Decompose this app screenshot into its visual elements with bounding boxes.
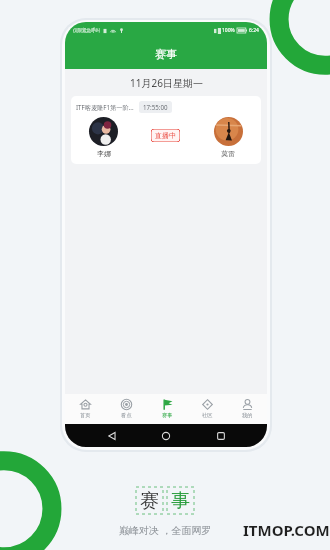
staticText: 看点 (121, 412, 132, 419)
button[interactable]: 社区 (187, 394, 227, 424)
button[interactable]: ITF喀麦隆F1第一阶... (71, 96, 261, 164)
button[interactable]: 看点 (106, 394, 147, 424)
button[interactable]: 首页 (65, 394, 106, 424)
button[interactable]: Back (104, 428, 120, 444)
staticText: 社区 (202, 412, 213, 419)
staticText: 莫雷 (221, 149, 235, 158)
staticText: 我的 (242, 412, 253, 419)
button[interactable]: 我的 (227, 394, 267, 424)
button[interactable]: 莫雷 (195, 117, 261, 158)
staticText: 首页 (80, 412, 91, 419)
staticText: 100% (222, 27, 235, 34)
staticText: ITMOP.COM (243, 520, 330, 540)
staticText: 赛 (140, 489, 159, 513)
staticText: 11月26日星期一 (130, 76, 203, 90)
staticText: ITF喀麦隆F1第一阶... (76, 103, 134, 111)
staticText: 事 (171, 489, 190, 513)
staticText: 17:55:00 (143, 103, 168, 111)
staticText: 赛事 (162, 412, 173, 419)
button[interactable]: 赛事 (147, 394, 187, 424)
staticText: 6:24 (249, 27, 259, 34)
button[interactable]: Home (158, 428, 174, 444)
staticText: 赛事 (155, 47, 177, 61)
staticText: 李娜 (97, 149, 111, 158)
staticText: 仅限紧急呼叫 (73, 28, 100, 34)
button[interactable]: Recents (213, 428, 229, 444)
button[interactable]: 李娜 (71, 117, 136, 158)
staticText: 直播中 (155, 131, 176, 140)
staticText: 巅峰对决 ，全面网罗 (119, 523, 212, 537)
